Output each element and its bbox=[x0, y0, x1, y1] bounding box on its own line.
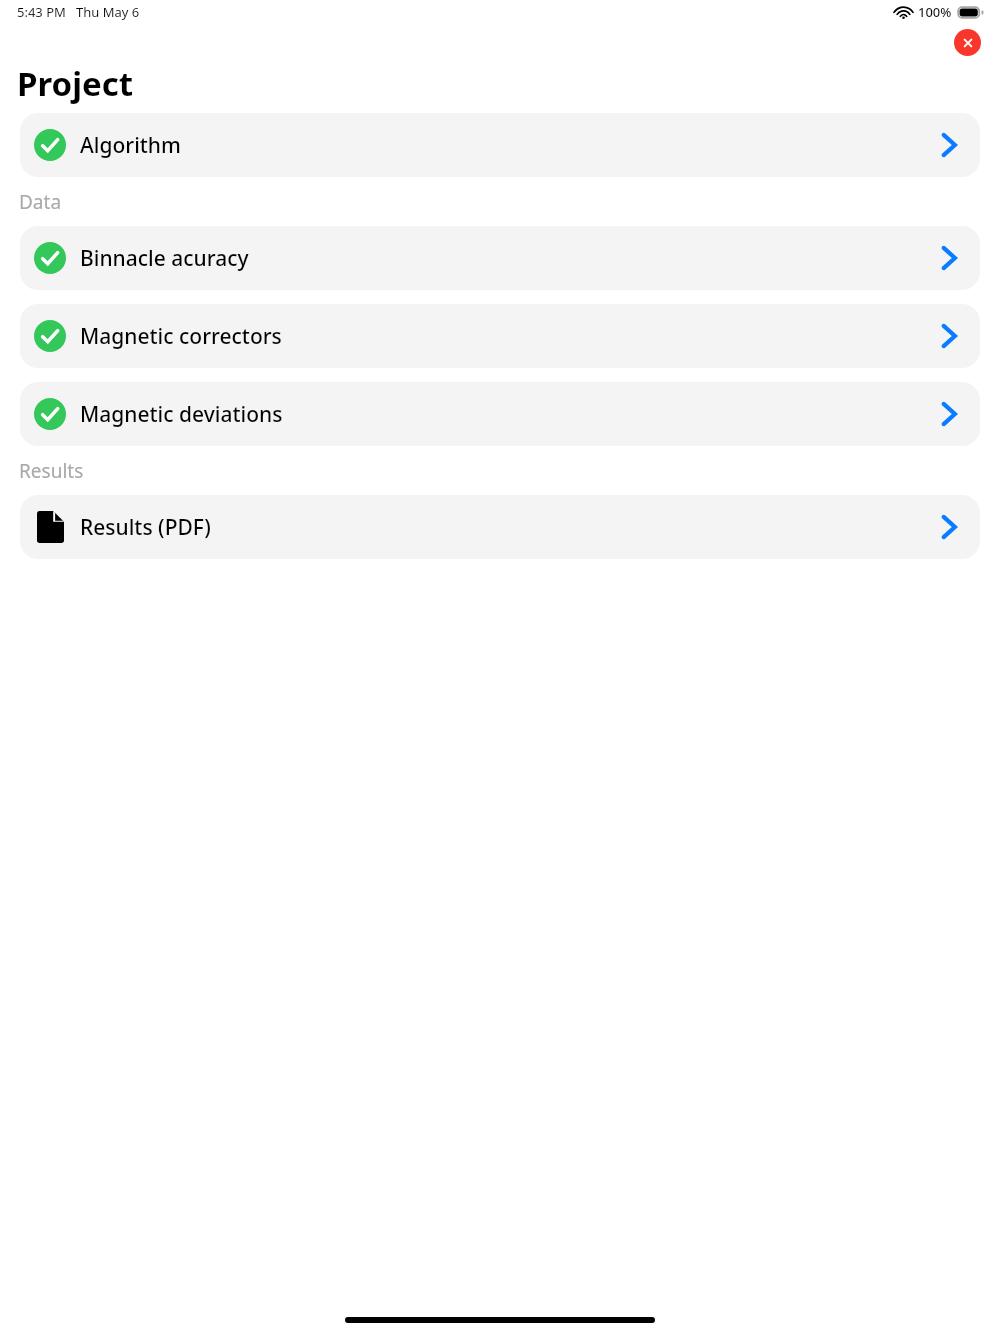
button[interactable]: Algorithm bbox=[20, 113, 980, 177]
button[interactable]: Magnetic correctors bbox=[20, 304, 980, 368]
staticText: Results (PDF) bbox=[80, 513, 934, 542]
button[interactable]: Magnetic deviations bbox=[20, 382, 980, 446]
button[interactable]: Results (PDF) bbox=[20, 495, 980, 559]
staticText: 5:43 PM bbox=[17, 3, 66, 21]
staticText: 100% bbox=[918, 3, 952, 21]
staticText: Thu May 6 bbox=[76, 3, 140, 21]
button[interactable]: Binnacle acuracy bbox=[20, 226, 980, 290]
staticText: Binnacle acuracy bbox=[80, 244, 934, 273]
staticText: Data bbox=[19, 189, 62, 215]
staticText: Magnetic deviations bbox=[80, 400, 934, 429]
staticText: Algorithm bbox=[80, 131, 934, 160]
staticText: Results bbox=[19, 458, 84, 484]
button[interactable]: Close bbox=[954, 29, 981, 56]
staticText: Project bbox=[17, 61, 134, 105]
staticText: Magnetic correctors bbox=[80, 322, 934, 351]
